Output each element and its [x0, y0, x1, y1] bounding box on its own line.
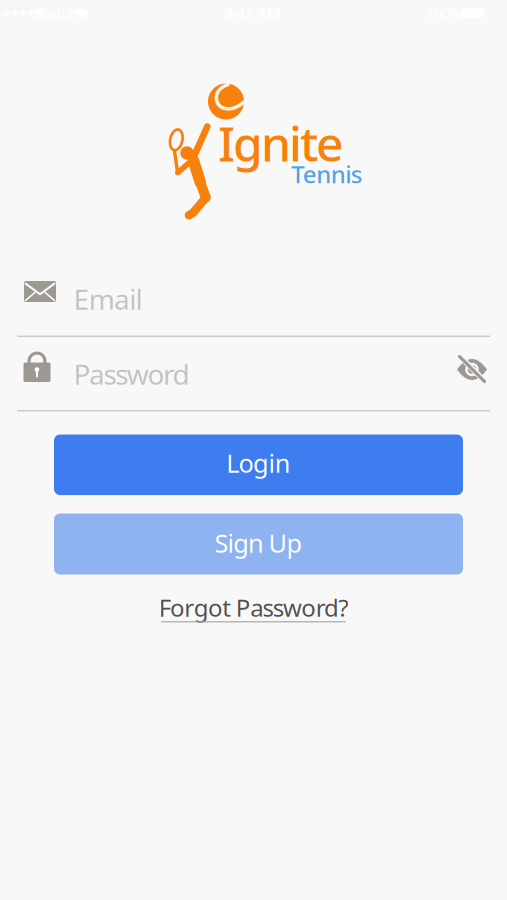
staticText: Forgot Password?	[159, 592, 348, 623]
button[interactable]: Forgot Password?	[161, 595, 346, 625]
staticText: Sign Up	[215, 526, 302, 560]
staticText: Email	[74, 280, 142, 318]
staticText: Ignite	[218, 111, 344, 175]
button[interactable]: Show password	[450, 349, 494, 389]
staticText: Tennis	[291, 158, 363, 190]
staticText: Password	[73, 355, 190, 393]
staticText: Login	[226, 446, 291, 480]
button[interactable]: Login	[54, 435, 463, 495]
button[interactable]: Sign Up	[54, 513, 463, 574]
button[interactable]: Email	[17, 275, 490, 337]
button[interactable]: Password	[17, 345, 490, 412]
